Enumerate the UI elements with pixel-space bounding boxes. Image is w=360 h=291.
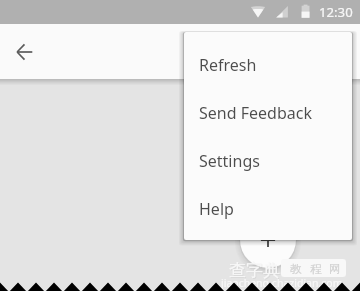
staticText: Send Feedback: [199, 102, 312, 124]
button[interactable]: Help: [184, 185, 352, 233]
button[interactable]: Add: [240, 212, 296, 268]
button[interactable]: Send Feedback: [184, 89, 352, 137]
staticText: jiaocheng.chazidian.com: [221, 276, 343, 290]
staticText: Settings: [199, 150, 260, 172]
staticText: 查字典: [230, 261, 281, 282]
button[interactable]: Settings: [184, 137, 352, 185]
staticText: Refresh: [199, 54, 257, 76]
staticText: 网: [329, 262, 341, 276]
staticText: 教: [290, 262, 302, 276]
staticText: 程: [310, 262, 322, 276]
button[interactable]: Back: [9, 36, 41, 68]
staticText: Help: [199, 198, 234, 220]
button[interactable]: Refresh: [184, 41, 352, 89]
staticText: 12:30: [319, 3, 353, 21]
staticText: 查字典: [229, 260, 280, 281]
